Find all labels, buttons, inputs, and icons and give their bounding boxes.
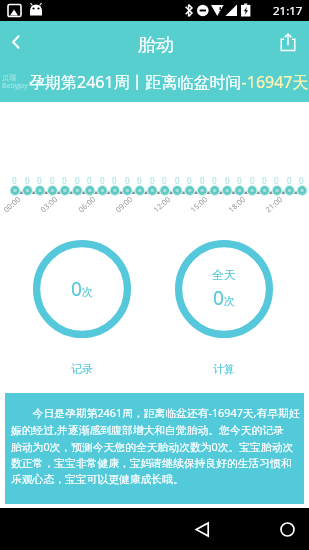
staticText: 0 bbox=[137, 175, 142, 186]
staticText: 00:00 bbox=[1, 194, 23, 214]
staticText: 0 bbox=[125, 175, 130, 186]
staticText: 0 bbox=[112, 175, 117, 186]
staticText: 0 bbox=[274, 175, 279, 186]
staticText: 09:00 bbox=[113, 194, 135, 214]
button[interactable]: 计算 bbox=[194, 360, 254, 378]
staticText: 0 bbox=[162, 175, 167, 186]
staticText: 0次 bbox=[213, 285, 235, 311]
staticText: 0 bbox=[175, 175, 180, 186]
staticText: 0 bbox=[37, 175, 42, 186]
button[interactable]: Share bbox=[268, 22, 308, 62]
staticText: 孕期第2461周丨距离临盆时间-16947天 bbox=[29, 71, 309, 93]
staticText: 0 bbox=[25, 175, 30, 186]
staticText: 21:00 bbox=[263, 194, 285, 214]
staticText: 0 bbox=[50, 175, 55, 186]
staticText: 15:00 bbox=[188, 194, 210, 214]
staticText: 0 bbox=[237, 175, 242, 186]
button[interactable]: Back bbox=[48, 508, 309, 550]
staticText: 0 bbox=[100, 175, 105, 186]
button[interactable]: 记录 bbox=[52, 360, 112, 378]
staticText: 0 bbox=[150, 175, 155, 186]
staticText: 0 bbox=[12, 175, 17, 186]
staticText: 胎动 bbox=[1, 34, 309, 57]
staticText: 21:17 bbox=[273, 3, 303, 19]
button[interactable]: Back bbox=[0, 22, 36, 62]
staticText: 0 bbox=[200, 175, 205, 186]
staticText: 0 bbox=[187, 175, 192, 186]
staticText: 0 bbox=[225, 175, 230, 186]
staticText: 计算 bbox=[213, 362, 235, 376]
staticText: 18:00 bbox=[226, 194, 248, 214]
staticText: 0 bbox=[62, 175, 67, 186]
staticText: 今日是孕期第2461周，距离临盆还有-16947天,有早期妊 娠的经过,并逐渐感… bbox=[11, 405, 303, 486]
staticText: 12:00 bbox=[151, 194, 173, 214]
button[interactable]: 全天 bbox=[175, 240, 273, 338]
button[interactable]: Home bbox=[133, 508, 309, 550]
staticText: 0次 bbox=[71, 276, 93, 302]
staticText: 0 bbox=[299, 175, 304, 186]
staticText: 0 bbox=[87, 175, 92, 186]
staticText: 0 bbox=[250, 175, 255, 186]
button[interactable]: 0次 bbox=[33, 240, 131, 338]
staticText: 0 bbox=[262, 175, 267, 186]
staticText: 贝瑞 BabyJoy bbox=[2, 73, 28, 90]
button[interactable]: Recents bbox=[220, 508, 309, 550]
staticText: 06:00 bbox=[76, 194, 98, 214]
staticText: 0 bbox=[212, 175, 217, 186]
staticText: 0 bbox=[75, 175, 80, 186]
staticText: 全天 bbox=[212, 267, 236, 282]
staticText: 03:00 bbox=[38, 194, 60, 214]
staticText: 记录 bbox=[71, 362, 93, 376]
staticText: 0 bbox=[287, 175, 292, 186]
